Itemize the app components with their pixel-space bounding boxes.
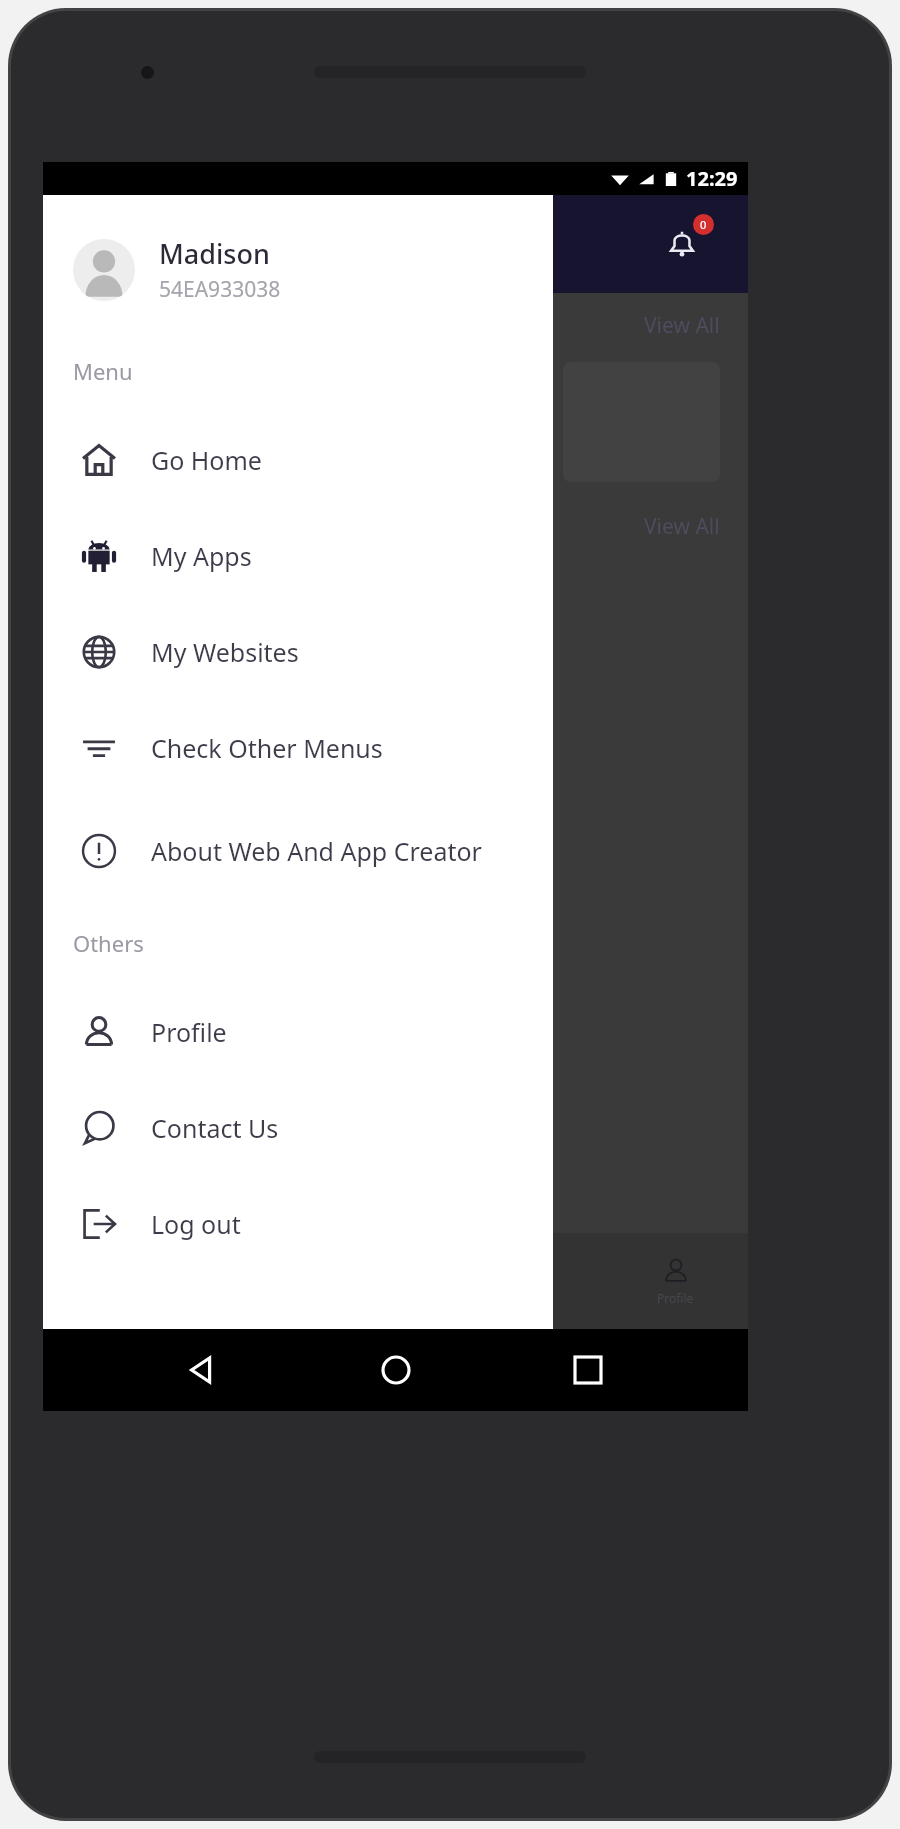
button[interactable]: Check Other Menus [43,700,553,796]
staticText: About Web And App Creator [151,834,482,868]
button[interactable]: Go Home [43,412,553,508]
staticText: 0 [700,217,707,232]
staticText: View All [644,311,720,340]
staticText: Log out [151,1207,241,1241]
staticText: Others [73,928,144,958]
button[interactable]: Profile [43,984,553,1080]
button[interactable]: Back [171,1338,235,1402]
staticText: Contact Us [151,1111,279,1145]
staticText: Menu [73,356,133,386]
staticText: Check Other Menus [151,731,383,765]
button[interactable]: Home [364,1338,428,1402]
staticText: My Apps [151,539,252,573]
staticText: 54EA933038 [159,275,281,304]
button[interactable]: Contact Us [43,1080,553,1176]
button[interactable]: Notifications [654,216,710,272]
staticText: Go Home [151,443,262,477]
staticText: Profile [151,1015,227,1049]
staticText: Profile [657,1290,694,1306]
button[interactable]: My Apps [43,508,553,604]
button[interactable]: About Web And App Creator [43,796,553,906]
staticText: Madison [159,235,270,272]
button[interactable]: Madison [73,235,537,304]
staticText: My Websites [151,635,299,669]
button[interactable]: Profile [657,1256,694,1306]
button[interactable]: My Websites [43,604,553,700]
button[interactable]: Recent apps [556,1338,620,1402]
button[interactable]: Log out [43,1176,553,1272]
staticText: View All [644,512,720,541]
staticText: 12:29 [686,165,738,192]
